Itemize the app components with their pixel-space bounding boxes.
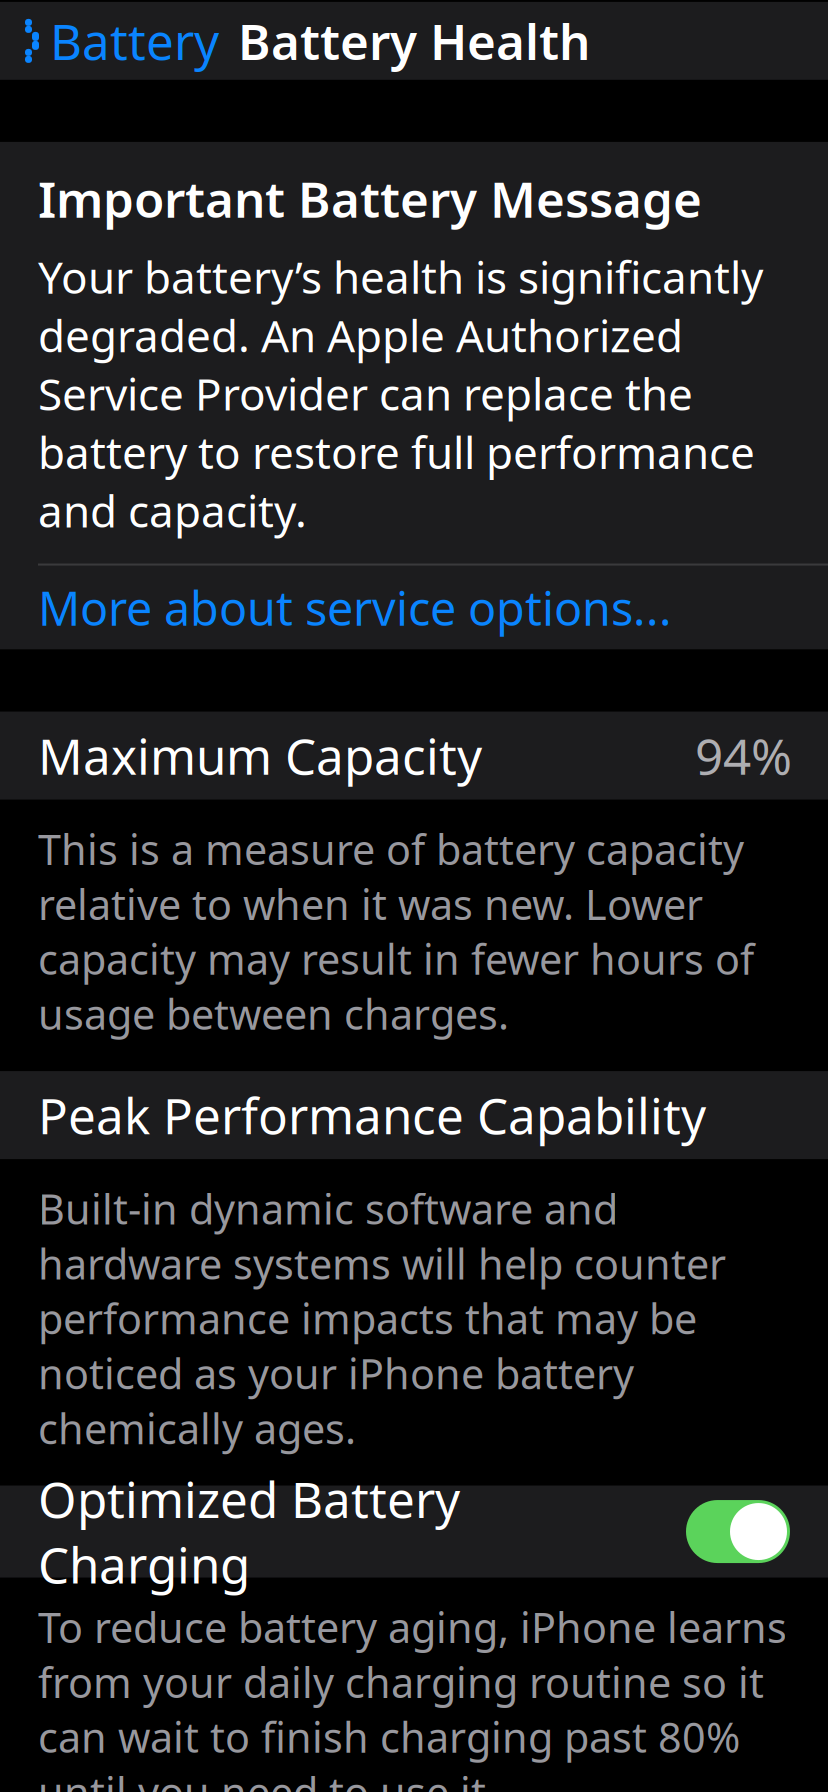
staticText: Optimized Battery Charging: [38, 1466, 460, 1597]
staticText: To reduce battery aging, iPhone learns f…: [38, 1599, 787, 1792]
staticText: Peak Performance Capability: [38, 1082, 706, 1148]
button[interactable]: Battery: [0, 5, 237, 77]
button[interactable]: Optimized Battery Charging: [0, 1485, 828, 1577]
staticText: Maximum Capacity: [38, 723, 482, 788]
staticText: Built-in dynamic software and hardware s…: [38, 1181, 726, 1455]
staticText: 94%: [695, 723, 792, 788]
staticText: Important Battery Message: [38, 166, 702, 231]
button[interactable]: More about service options...: [0, 566, 828, 650]
staticText: Battery Health: [238, 8, 590, 74]
staticText: More about service options...: [38, 577, 672, 639]
button[interactable]: Peak Performance Capability: [0, 1071, 828, 1159]
staticText: Your battery’s health is significantly d…: [38, 247, 763, 539]
staticText: Battery: [50, 8, 219, 74]
staticText: This is a measure of battery capacity re…: [38, 822, 754, 1041]
